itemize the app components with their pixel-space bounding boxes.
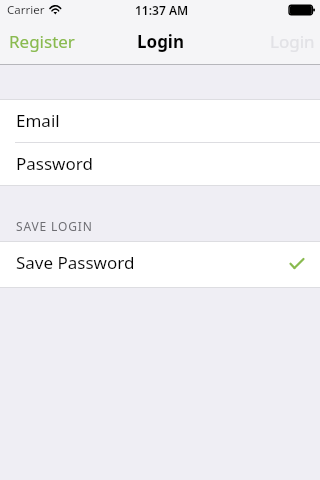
button[interactable]: Password <box>0 143 320 185</box>
button[interactable]: Register <box>0 20 85 64</box>
button[interactable]: Login <box>260 20 320 64</box>
staticText: Email <box>16 109 60 132</box>
other: Selected <box>290 258 304 269</box>
button[interactable]: Save Password <box>0 242 320 287</box>
button[interactable]: Email <box>0 100 320 142</box>
other: Wi-Fi signal <box>49 2 62 18</box>
staticText: 11:37 AM <box>135 2 189 18</box>
staticText: Password <box>16 152 93 175</box>
staticText: Carrier <box>7 2 45 18</box>
staticText: Save Password <box>16 251 135 274</box>
other: Battery full <box>289 5 315 15</box>
staticText: SAVE LOGIN <box>16 218 93 234</box>
staticText: Register <box>9 30 75 53</box>
staticText: Login <box>137 30 185 53</box>
staticText: Login <box>270 30 315 53</box>
